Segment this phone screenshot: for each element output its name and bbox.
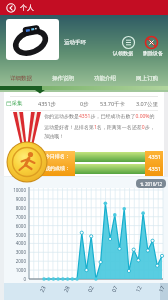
staticText: 53.70千卡	[100, 100, 126, 108]
staticText: 28	[62, 284, 71, 293]
staticText: 4351	[118, 153, 161, 160]
staticText: 6000	[0, 223, 26, 229]
staticText: 4000	[0, 240, 26, 246]
staticText: 02	[86, 284, 95, 293]
staticText: 23	[38, 284, 47, 293]
button[interactable]	[142, 35, 166, 58]
staticText: 9000	[0, 196, 26, 202]
staticText: 12	[134, 284, 143, 293]
staticText: 10000	[0, 187, 26, 193]
staticText: 网上订购	[136, 75, 158, 82]
button[interactable]	[6, 19, 59, 60]
staticText: 3000	[0, 249, 26, 255]
staticText: 功能介绍	[94, 75, 116, 82]
staticText: 4351步	[38, 100, 57, 108]
staticText: 详细数据	[10, 75, 32, 82]
staticText: 1000	[0, 267, 26, 273]
button[interactable]: 网上订购	[126, 71, 168, 86]
staticText: 认领数据	[113, 50, 133, 56]
button[interactable]: ⇅ 2016/12	[136, 179, 166, 188]
staticText: 8000	[0, 205, 26, 211]
staticText: 删除设备	[143, 50, 163, 56]
staticText: 你的运动步数是4351步，已经成功击败了0.00%的运动爱好者！总排名第1名，距…	[44, 113, 158, 140]
staticText: 7000	[0, 214, 26, 220]
button[interactable]: 功能介绍	[84, 71, 126, 86]
staticText: 3.07公里	[136, 100, 158, 108]
button[interactable]: 个人	[0, 0, 168, 15]
staticText: ⇅ 2016/12	[140, 181, 163, 187]
button[interactable]	[112, 35, 138, 58]
staticText: 今日排名：	[45, 153, 70, 159]
staticText: 0步	[80, 100, 89, 108]
staticText: 个人	[20, 3, 34, 12]
staticText: 操作说明	[52, 75, 74, 82]
staticText: 0	[0, 276, 26, 282]
staticText: 5000	[0, 232, 26, 238]
staticText: 4351	[118, 165, 161, 172]
staticText: 17	[157, 284, 166, 293]
button[interactable]: 操作说明	[42, 71, 84, 86]
staticText: 我的成绩：	[45, 165, 70, 171]
staticText: 已采集	[6, 100, 23, 107]
staticText: 运动手环	[64, 39, 86, 46]
staticText: 2000	[0, 258, 26, 264]
button[interactable]: 详细数据	[0, 71, 42, 86]
staticText: 07	[110, 284, 119, 293]
